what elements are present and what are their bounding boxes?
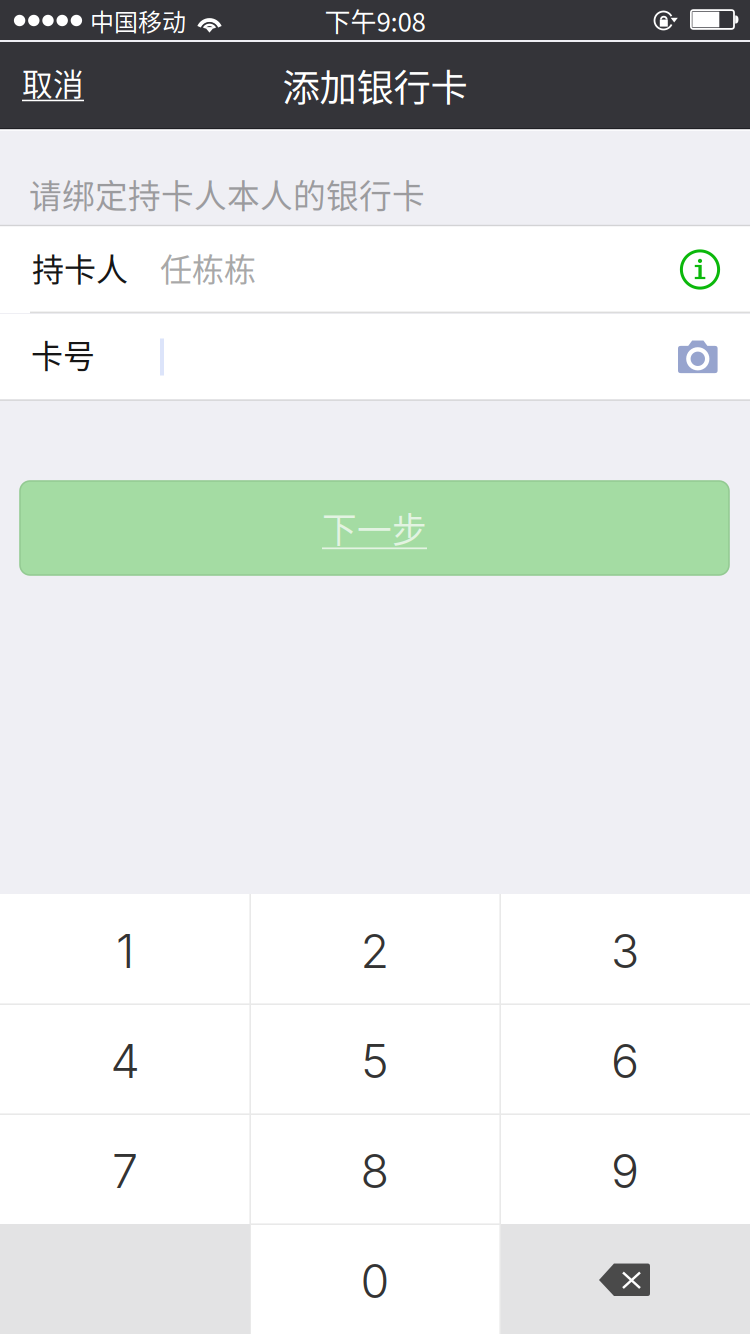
button[interactable]: 4 [0,1004,250,1114]
staticText: 8 [360,1143,389,1199]
staticText: 中国移动 [90,3,186,38]
staticText: 4 [110,1033,139,1089]
staticText: 1 [116,923,134,979]
button[interactable]: 7 [0,1114,250,1224]
staticText: 5 [361,1033,389,1089]
button[interactable]: 9 [500,1114,750,1224]
button[interactable]: 6 [500,1004,750,1114]
button[interactable]: 持卡人 [0,226,750,313]
staticText: 持卡人 [32,244,128,291]
button[interactable]: 0 [250,1224,500,1334]
staticText: 0 [360,1253,389,1309]
staticText: 取消 [22,60,84,105]
button[interactable]: 8 [250,1114,500,1224]
button[interactable]: 卡号 [0,314,750,400]
button[interactable]: 下一步 [20,481,729,575]
button[interactable]: 5 [250,1004,500,1114]
button[interactable]: 取消 [0,42,140,129]
staticText: 3 [611,923,639,979]
button[interactable]: 2 [250,894,500,1004]
staticText: 下一步 [322,503,427,553]
staticText: 下午9:08 [324,2,425,39]
staticText: 卡号 [31,331,95,377]
staticText: 6 [611,1033,639,1089]
staticText: 9 [611,1143,639,1199]
button[interactable]: 3 [500,894,750,1004]
button[interactable]: Delete [500,1224,750,1334]
staticText: 请绑定持卡人本人的银行卡 [29,170,425,218]
staticText: 任栋栋 [160,244,256,291]
staticText: 7 [112,1143,138,1199]
button[interactable]: 1 [0,894,250,1004]
staticText: 2 [360,923,389,979]
staticText: 添加银行卡 [282,58,467,113]
